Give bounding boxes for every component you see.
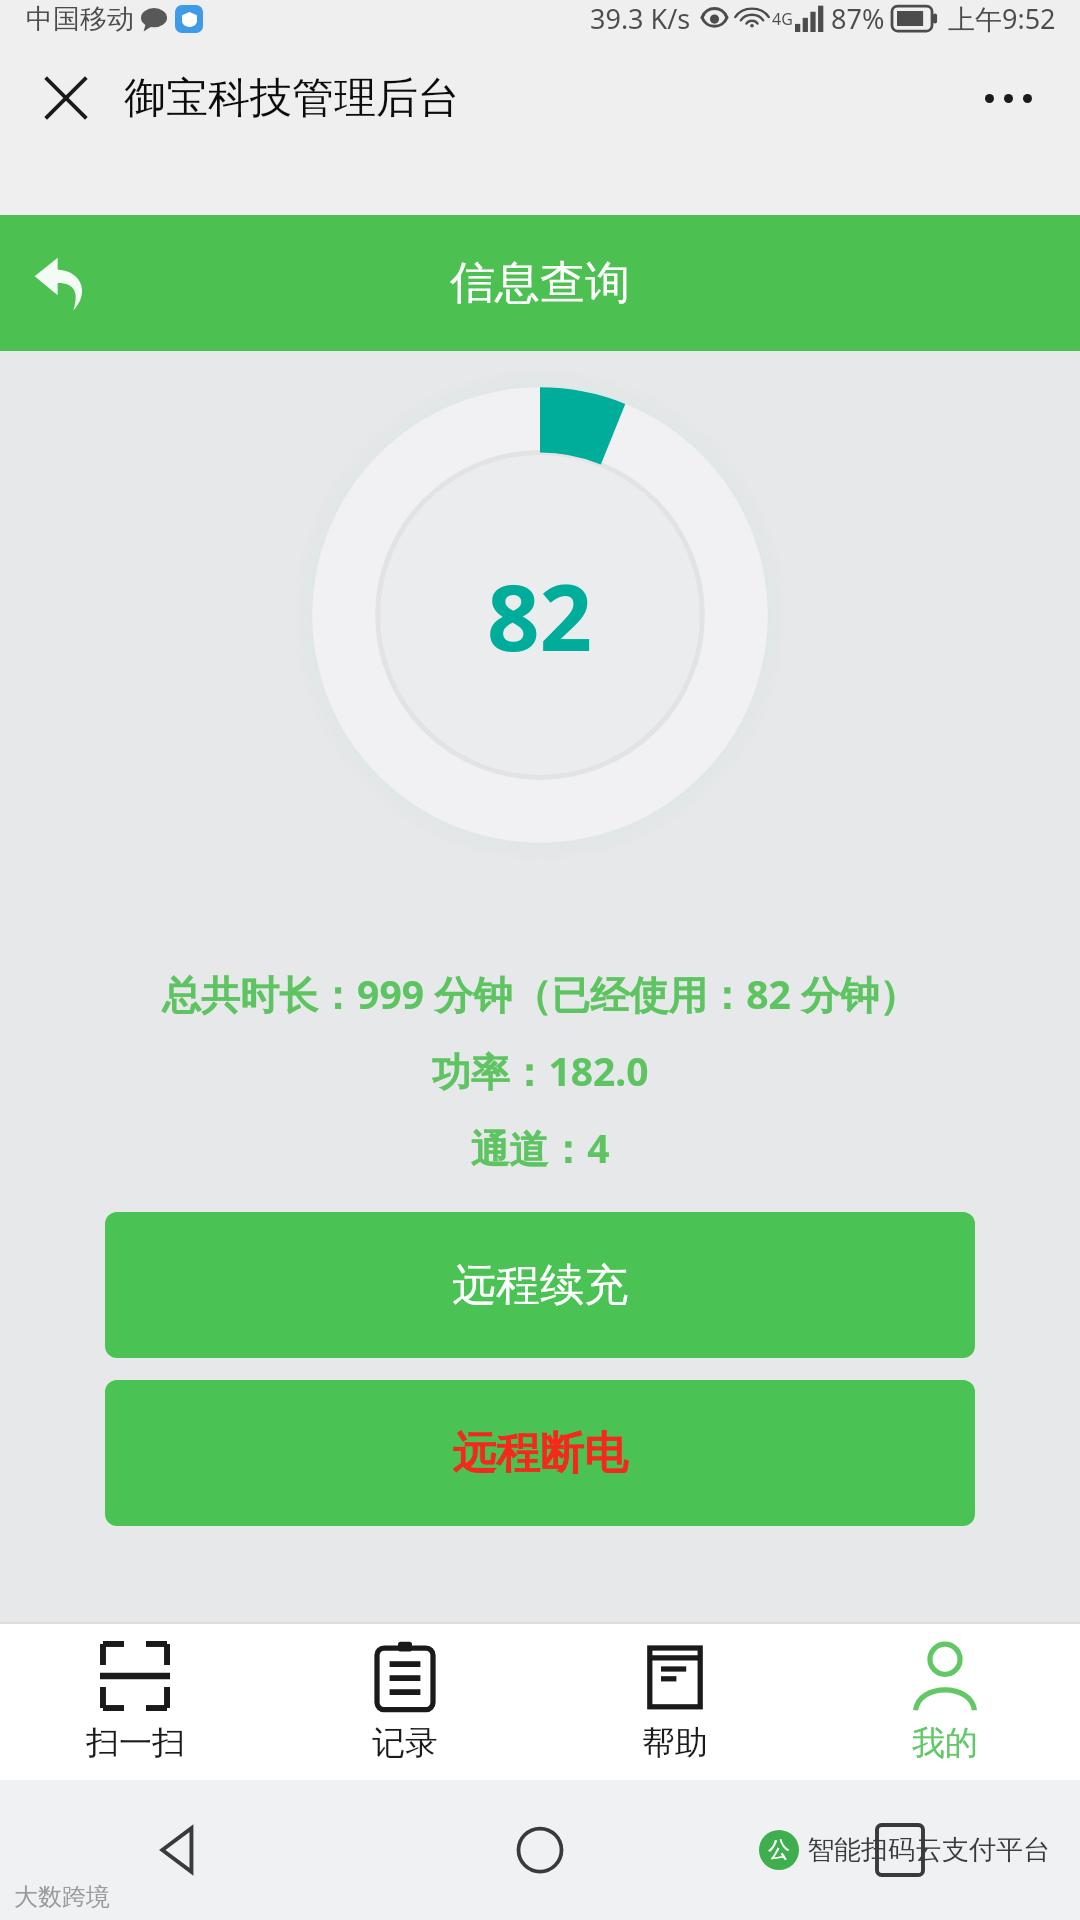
button[interactable]: 关闭 [34, 66, 98, 130]
staticText: 功率：182.0 [431, 1044, 649, 1097]
staticText: 通道：4 [470, 1121, 610, 1174]
button[interactable]: 主屏幕 [360, 1780, 720, 1920]
button[interactable]: 最近任务 [720, 1780, 1080, 1920]
staticText: 大数跨境 [14, 1882, 110, 1912]
staticText: 4G [772, 8, 793, 30]
staticText: 中国移动 [26, 2, 134, 36]
button[interactable]: 更多 [972, 66, 1044, 130]
button[interactable]: 我的 [810, 1635, 1080, 1770]
staticText: 智能扫码云支付平台 [807, 1833, 1050, 1867]
staticText: 87% [831, 0, 885, 37]
staticText: 远程续充 [452, 1258, 628, 1313]
staticText: 远程断电 [452, 1426, 628, 1481]
button[interactable]: 返回 [0, 1780, 360, 1920]
button[interactable]: 远程断电 [105, 1380, 975, 1526]
staticText: 我的 [912, 1722, 978, 1764]
staticText: 信息查询 [450, 255, 630, 312]
staticText: 帮助 [642, 1722, 708, 1764]
button[interactable]: 记录 [270, 1635, 540, 1770]
button[interactable]: 返回 [18, 240, 104, 326]
staticText: 御宝科技管理后台 [124, 72, 460, 125]
staticText: 上午9:52 [948, 0, 1056, 37]
staticText: 公 [768, 1836, 790, 1864]
button[interactable]: 帮助 [540, 1635, 810, 1770]
staticText: 39.3 K/s [590, 0, 691, 37]
button[interactable]: 远程续充 [105, 1212, 975, 1358]
staticText: 记录 [372, 1722, 438, 1764]
staticText: 82 [487, 553, 593, 678]
staticText: 扫一扫 [86, 1722, 185, 1764]
button[interactable]: 扫一扫 [0, 1635, 270, 1770]
staticText: 总共时长：999 分钟（已经使用：82 分钟） [162, 967, 918, 1020]
